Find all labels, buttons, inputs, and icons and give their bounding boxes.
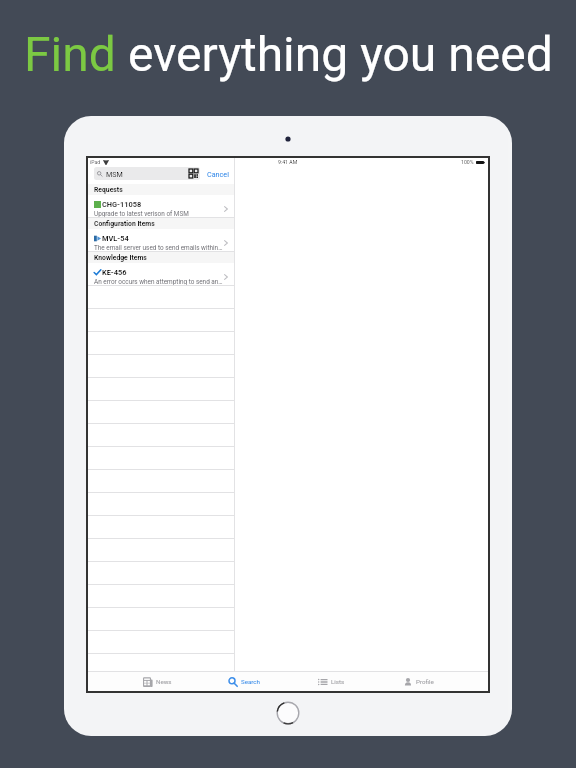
- staticText: Upgrade to latest verison of MSM: [94, 210, 189, 217]
- button[interactable]: CHG-11058: [88, 195, 234, 218]
- staticText: Lists: [331, 678, 345, 685]
- staticText: An error occurs when attempting to send …: [94, 278, 223, 285]
- staticText: CHG-11058: [102, 200, 142, 209]
- button[interactable]: Cancel: [207, 170, 229, 178]
- staticText: MSM: [106, 170, 123, 178]
- staticText: iPad: [90, 159, 101, 165]
- button[interactable]: MSM: [94, 167, 200, 180]
- staticText: News: [156, 678, 172, 685]
- staticText: Knowledge Items: [94, 254, 147, 262]
- staticText: 9:41 AM: [278, 159, 298, 165]
- staticText: Cancel: [207, 170, 229, 178]
- other: Wi-Fi: [103, 160, 109, 165]
- other: Scan code: [189, 169, 198, 178]
- button[interactable]: MVL-54: [88, 229, 234, 252]
- staticText: KE-456: [102, 268, 127, 277]
- staticText: MVL-54: [102, 234, 129, 243]
- other: Battery full: [476, 161, 485, 164]
- staticText: The email server used to send emails wit…: [94, 244, 223, 251]
- staticText: Requests: [94, 186, 123, 194]
- button[interactable]: News: [114, 672, 201, 691]
- staticText: Configuration Items: [94, 220, 155, 228]
- staticText: 100%: [461, 159, 474, 165]
- staticText: Search: [241, 678, 261, 685]
- button[interactable]: Lists: [288, 672, 375, 691]
- button[interactable]: Profile: [375, 672, 462, 691]
- staticText: everything you need: [128, 26, 553, 82]
- staticText: Profile: [416, 678, 434, 685]
- button[interactable]: Search: [201, 672, 288, 691]
- button[interactable]: KE-456: [88, 263, 234, 286]
- staticText: Find: [24, 26, 128, 82]
